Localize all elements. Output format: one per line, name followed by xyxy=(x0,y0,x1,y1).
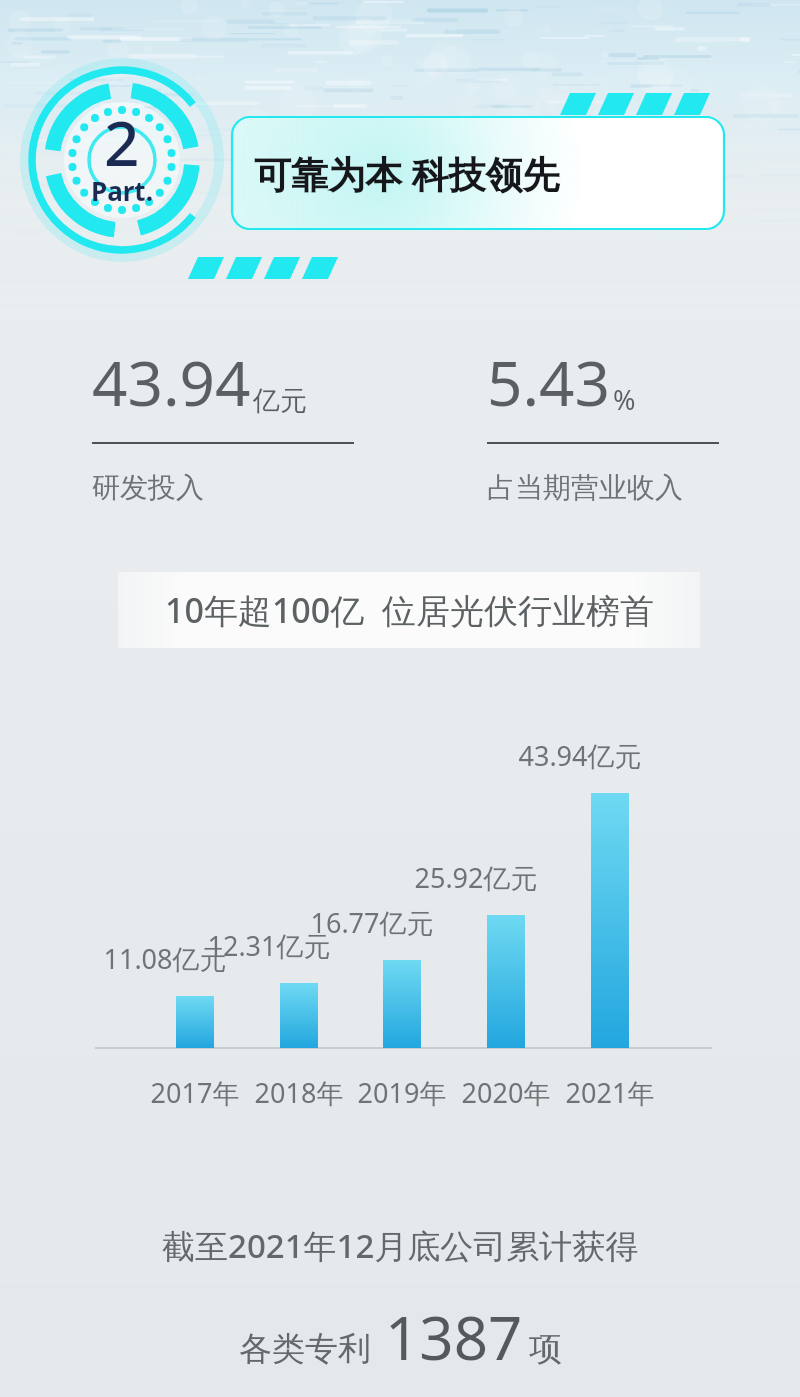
staticText: 亿元 xyxy=(253,384,307,418)
staticText: 25.92亿元 xyxy=(406,859,546,896)
staticText: 项 xyxy=(529,1328,562,1370)
staticText: 2018年 xyxy=(229,1074,369,1111)
button[interactable]: Part 2 xyxy=(22,60,222,260)
staticText: 各类专利 xyxy=(239,1328,371,1370)
staticText: 10年超100亿 位居光伏行业榜首 xyxy=(165,587,654,633)
staticText: 可靠为本 科技领先 xyxy=(254,148,560,199)
button[interactable]: 5.43 xyxy=(487,340,719,505)
staticText: 43.94亿元 xyxy=(510,737,650,774)
staticText: 截至2021年12月底公司累计获得 xyxy=(162,1223,639,1268)
button[interactable]: 可靠为本 科技领先 xyxy=(232,117,724,229)
staticText: 2 xyxy=(104,100,140,184)
staticText: 5.43 xyxy=(487,340,611,424)
staticText: 2017年 xyxy=(125,1074,265,1111)
staticText: 16.77亿元 xyxy=(302,904,442,941)
staticText: % xyxy=(613,381,636,418)
staticText: Part. xyxy=(91,173,153,208)
staticText: 占当期营业收入 xyxy=(487,470,683,505)
staticText: 2020年 xyxy=(436,1074,576,1111)
staticText: 2021年 xyxy=(540,1074,680,1111)
staticText: 2019年 xyxy=(332,1074,472,1111)
staticText: 1387 xyxy=(385,1296,523,1378)
staticText: 12.31亿元 xyxy=(199,927,339,964)
button[interactable]: 10年超100亿 位居光伏行业榜首 xyxy=(118,572,700,648)
staticText: 11.08亿元 xyxy=(95,940,235,977)
button[interactable]: 43.94 xyxy=(92,340,354,505)
staticText: 研发投入 xyxy=(92,470,204,505)
staticText: 43.94 xyxy=(92,340,251,424)
